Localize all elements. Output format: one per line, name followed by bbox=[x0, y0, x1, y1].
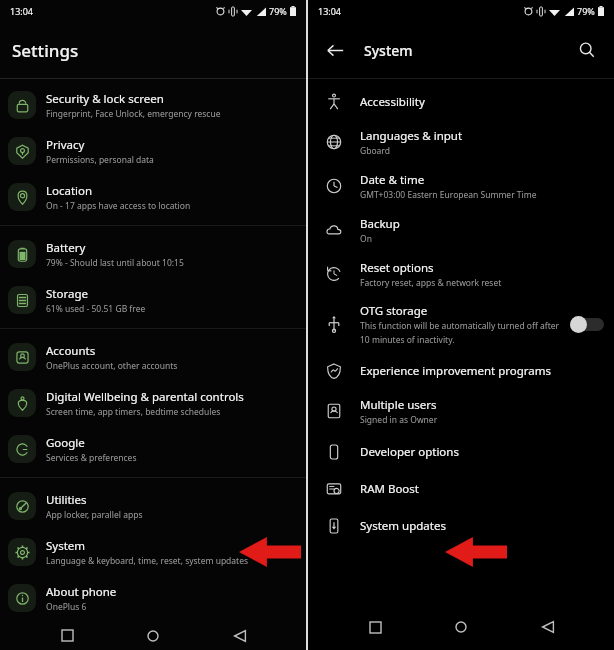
staticText: Permissions, personal data bbox=[46, 154, 154, 166]
button[interactable]: Back bbox=[320, 35, 350, 65]
staticText: System bbox=[46, 538, 86, 554]
staticText: Gboard bbox=[360, 145, 390, 157]
staticText: Settings bbox=[12, 39, 79, 62]
staticText: OTG storage bbox=[360, 303, 428, 319]
staticText: Factory reset, apps & network reset bbox=[360, 277, 502, 289]
button[interactable]: Storage bbox=[0, 277, 306, 323]
button[interactable]: Languages & input bbox=[308, 120, 614, 164]
staticText: 79% bbox=[577, 5, 595, 17]
button[interactable]: Accessibility bbox=[308, 83, 614, 120]
staticText: Language & keyboard, time, reset, system… bbox=[46, 555, 249, 567]
staticText: Developer options bbox=[360, 444, 459, 460]
button[interactable]: Date & time bbox=[308, 164, 614, 208]
button[interactable]: Digital Wellbeing & parental controls bbox=[0, 380, 306, 426]
button[interactable]: Recent apps bbox=[47, 621, 87, 650]
button[interactable]: OTG storage bbox=[308, 296, 614, 352]
staticText: Fingerprint, Face Unlock, emergency resc… bbox=[46, 108, 221, 120]
button[interactable]: Experience improvement programs bbox=[308, 352, 614, 389]
staticText: Services & preferences bbox=[46, 452, 137, 464]
button[interactable]: Backup bbox=[308, 208, 614, 252]
button[interactable]: Home bbox=[133, 621, 173, 650]
staticText: System updates bbox=[360, 518, 446, 534]
staticText: Google bbox=[46, 435, 85, 451]
staticText: App locker, parallel apps bbox=[46, 509, 143, 521]
staticText: GMT+03:00 Eastern European Summer Time bbox=[360, 189, 537, 201]
staticText: Battery bbox=[46, 240, 86, 256]
staticText: RAM Boost bbox=[360, 481, 419, 497]
staticText: Screen time, app timers, bedtime schedul… bbox=[46, 406, 221, 418]
button[interactable]: About phone bbox=[0, 575, 306, 621]
button[interactable]: Utilities bbox=[0, 483, 306, 529]
staticText: 79% bbox=[269, 5, 287, 17]
button[interactable]: System updates bbox=[308, 507, 614, 544]
staticText: Reset options bbox=[360, 260, 434, 276]
staticText: 10 minutes of inactivity. bbox=[360, 334, 455, 346]
staticText: Accounts bbox=[46, 343, 96, 359]
staticText: 79% - Should last until about 10:15 bbox=[46, 257, 184, 269]
staticText: 61% used - 50.51 GB free bbox=[46, 303, 146, 315]
button[interactable]: Recent apps bbox=[355, 607, 395, 647]
button[interactable]: Home bbox=[441, 607, 481, 647]
staticText: Experience improvement programs bbox=[360, 363, 552, 379]
staticText: OnePlus account, other accounts bbox=[46, 360, 178, 372]
button[interactable]: OTG storage toggle bbox=[570, 315, 604, 333]
staticText: Backup bbox=[360, 216, 400, 232]
button[interactable]: Privacy bbox=[0, 128, 306, 174]
staticText: System bbox=[364, 41, 413, 60]
button[interactable]: Battery bbox=[0, 231, 306, 277]
button[interactable]: Search bbox=[572, 35, 602, 65]
button[interactable]: Security & lock screen bbox=[0, 82, 306, 128]
staticText: Digital Wellbeing & parental controls bbox=[46, 389, 244, 405]
staticText: Storage bbox=[46, 286, 88, 302]
button[interactable]: RAM Boost bbox=[308, 470, 614, 507]
button[interactable]: Multiple users bbox=[308, 389, 614, 433]
button[interactable]: Location bbox=[0, 174, 306, 220]
staticText: 13:04 bbox=[318, 5, 342, 17]
button[interactable]: System bbox=[0, 529, 306, 575]
button[interactable]: Developer options bbox=[308, 433, 614, 470]
button[interactable]: Back bbox=[528, 607, 568, 647]
staticText: 13:04 bbox=[10, 5, 34, 17]
button[interactable]: Back bbox=[220, 621, 260, 650]
staticText: On - 17 apps have access to location bbox=[46, 200, 191, 212]
staticText: Location bbox=[46, 183, 93, 199]
button[interactable]: Accounts bbox=[0, 334, 306, 380]
staticText: About phone bbox=[46, 584, 117, 600]
staticText: Signed in as Owner bbox=[360, 414, 438, 426]
staticText: Accessibility bbox=[360, 94, 425, 110]
staticText: Languages & input bbox=[360, 128, 463, 144]
staticText: This function will be automatically turn… bbox=[360, 320, 560, 332]
staticText: Privacy bbox=[46, 137, 85, 153]
staticText: Multiple users bbox=[360, 397, 437, 413]
staticText: On bbox=[360, 233, 372, 245]
staticText: Security & lock screen bbox=[46, 91, 164, 107]
staticText: Date & time bbox=[360, 172, 425, 188]
staticText: Utilities bbox=[46, 492, 87, 508]
button[interactable]: Reset options bbox=[308, 252, 614, 296]
staticText: OnePlus 6 bbox=[46, 601, 87, 613]
button[interactable]: Google bbox=[0, 426, 306, 472]
